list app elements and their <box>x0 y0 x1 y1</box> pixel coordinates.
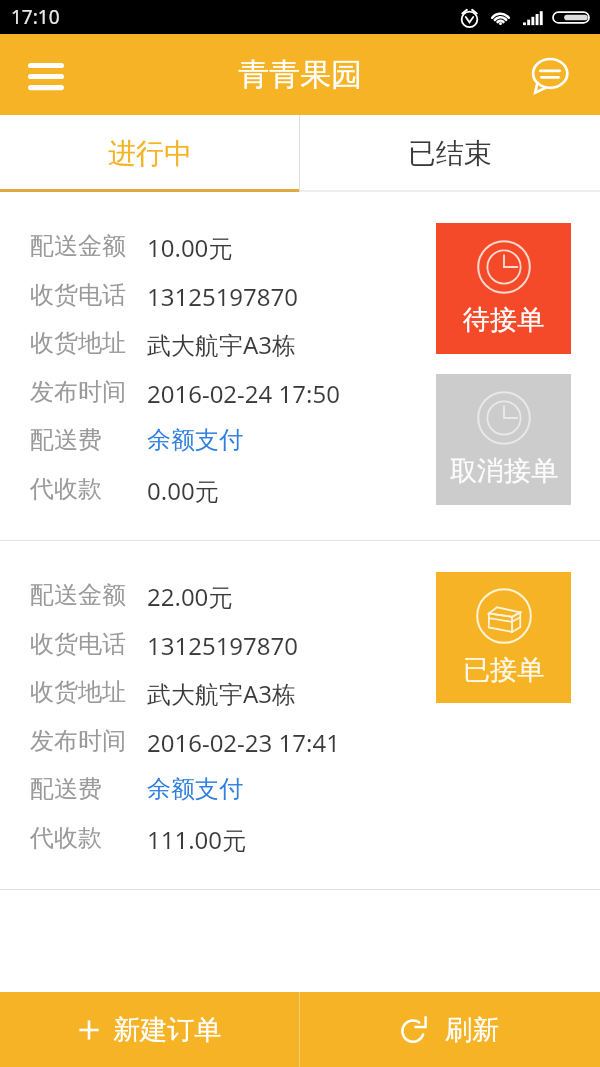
button[interactable]: 待接单 <box>436 223 571 354</box>
staticText: 进行中 <box>108 136 192 171</box>
staticText: 发布时间 <box>30 377 126 406</box>
staticText: 已结束 <box>408 136 492 171</box>
staticText: 收货电话 <box>30 280 126 309</box>
staticText: 余额支付 <box>147 774 243 803</box>
staticText: 配送费 <box>30 774 102 803</box>
staticText: 111.00元 <box>147 823 247 852</box>
staticText: 配送费 <box>30 425 102 454</box>
staticText: 收货电话 <box>30 629 126 658</box>
staticText: 取消接单 <box>450 454 558 488</box>
button[interactable]: 已接单 <box>436 572 571 703</box>
staticText: 2016-02-23 17:41 <box>147 726 340 755</box>
staticText: 0.00元 <box>147 474 219 503</box>
button[interactable]: Messages <box>516 34 600 115</box>
button[interactable]: 配送金额 <box>0 541 600 889</box>
staticText: 2016-02-24 17:50 <box>147 377 340 406</box>
staticText: 代收款 <box>30 474 102 503</box>
staticText: 刷新 <box>445 1013 499 1047</box>
button[interactable]: 配送金额 <box>0 192 600 540</box>
staticText: 22.00元 <box>147 580 233 609</box>
staticText: 配送金额 <box>30 231 126 260</box>
staticText: 收货地址 <box>30 677 126 706</box>
staticText: 新建订单 <box>113 1013 221 1047</box>
staticText: 余额支付 <box>147 425 243 454</box>
staticText: 待接单 <box>463 303 544 337</box>
button[interactable]: 新建订单 <box>0 992 299 1067</box>
staticText: 青青果园 <box>238 55 362 94</box>
staticText: 收货地址 <box>30 328 126 357</box>
staticText: 发布时间 <box>30 726 126 755</box>
button[interactable]: 已结束 <box>300 115 600 192</box>
staticText: 已接单 <box>463 653 544 687</box>
button[interactable]: 刷新 <box>300 992 600 1067</box>
staticText: 17:10 <box>11 4 60 30</box>
staticText: 武大航宇A3栋 <box>147 328 297 357</box>
staticText: 配送金额 <box>30 580 126 609</box>
staticText: 13125197870 <box>147 280 299 309</box>
staticText: 代收款 <box>30 823 102 852</box>
button[interactable]: 进行中 <box>0 115 299 192</box>
staticText: 13125197870 <box>147 629 299 658</box>
staticText: 10.00元 <box>147 231 233 260</box>
button[interactable]: 取消接单 <box>436 374 571 505</box>
button[interactable]: Menu <box>0 34 84 115</box>
staticText: 武大航宇A3栋 <box>147 677 297 706</box>
